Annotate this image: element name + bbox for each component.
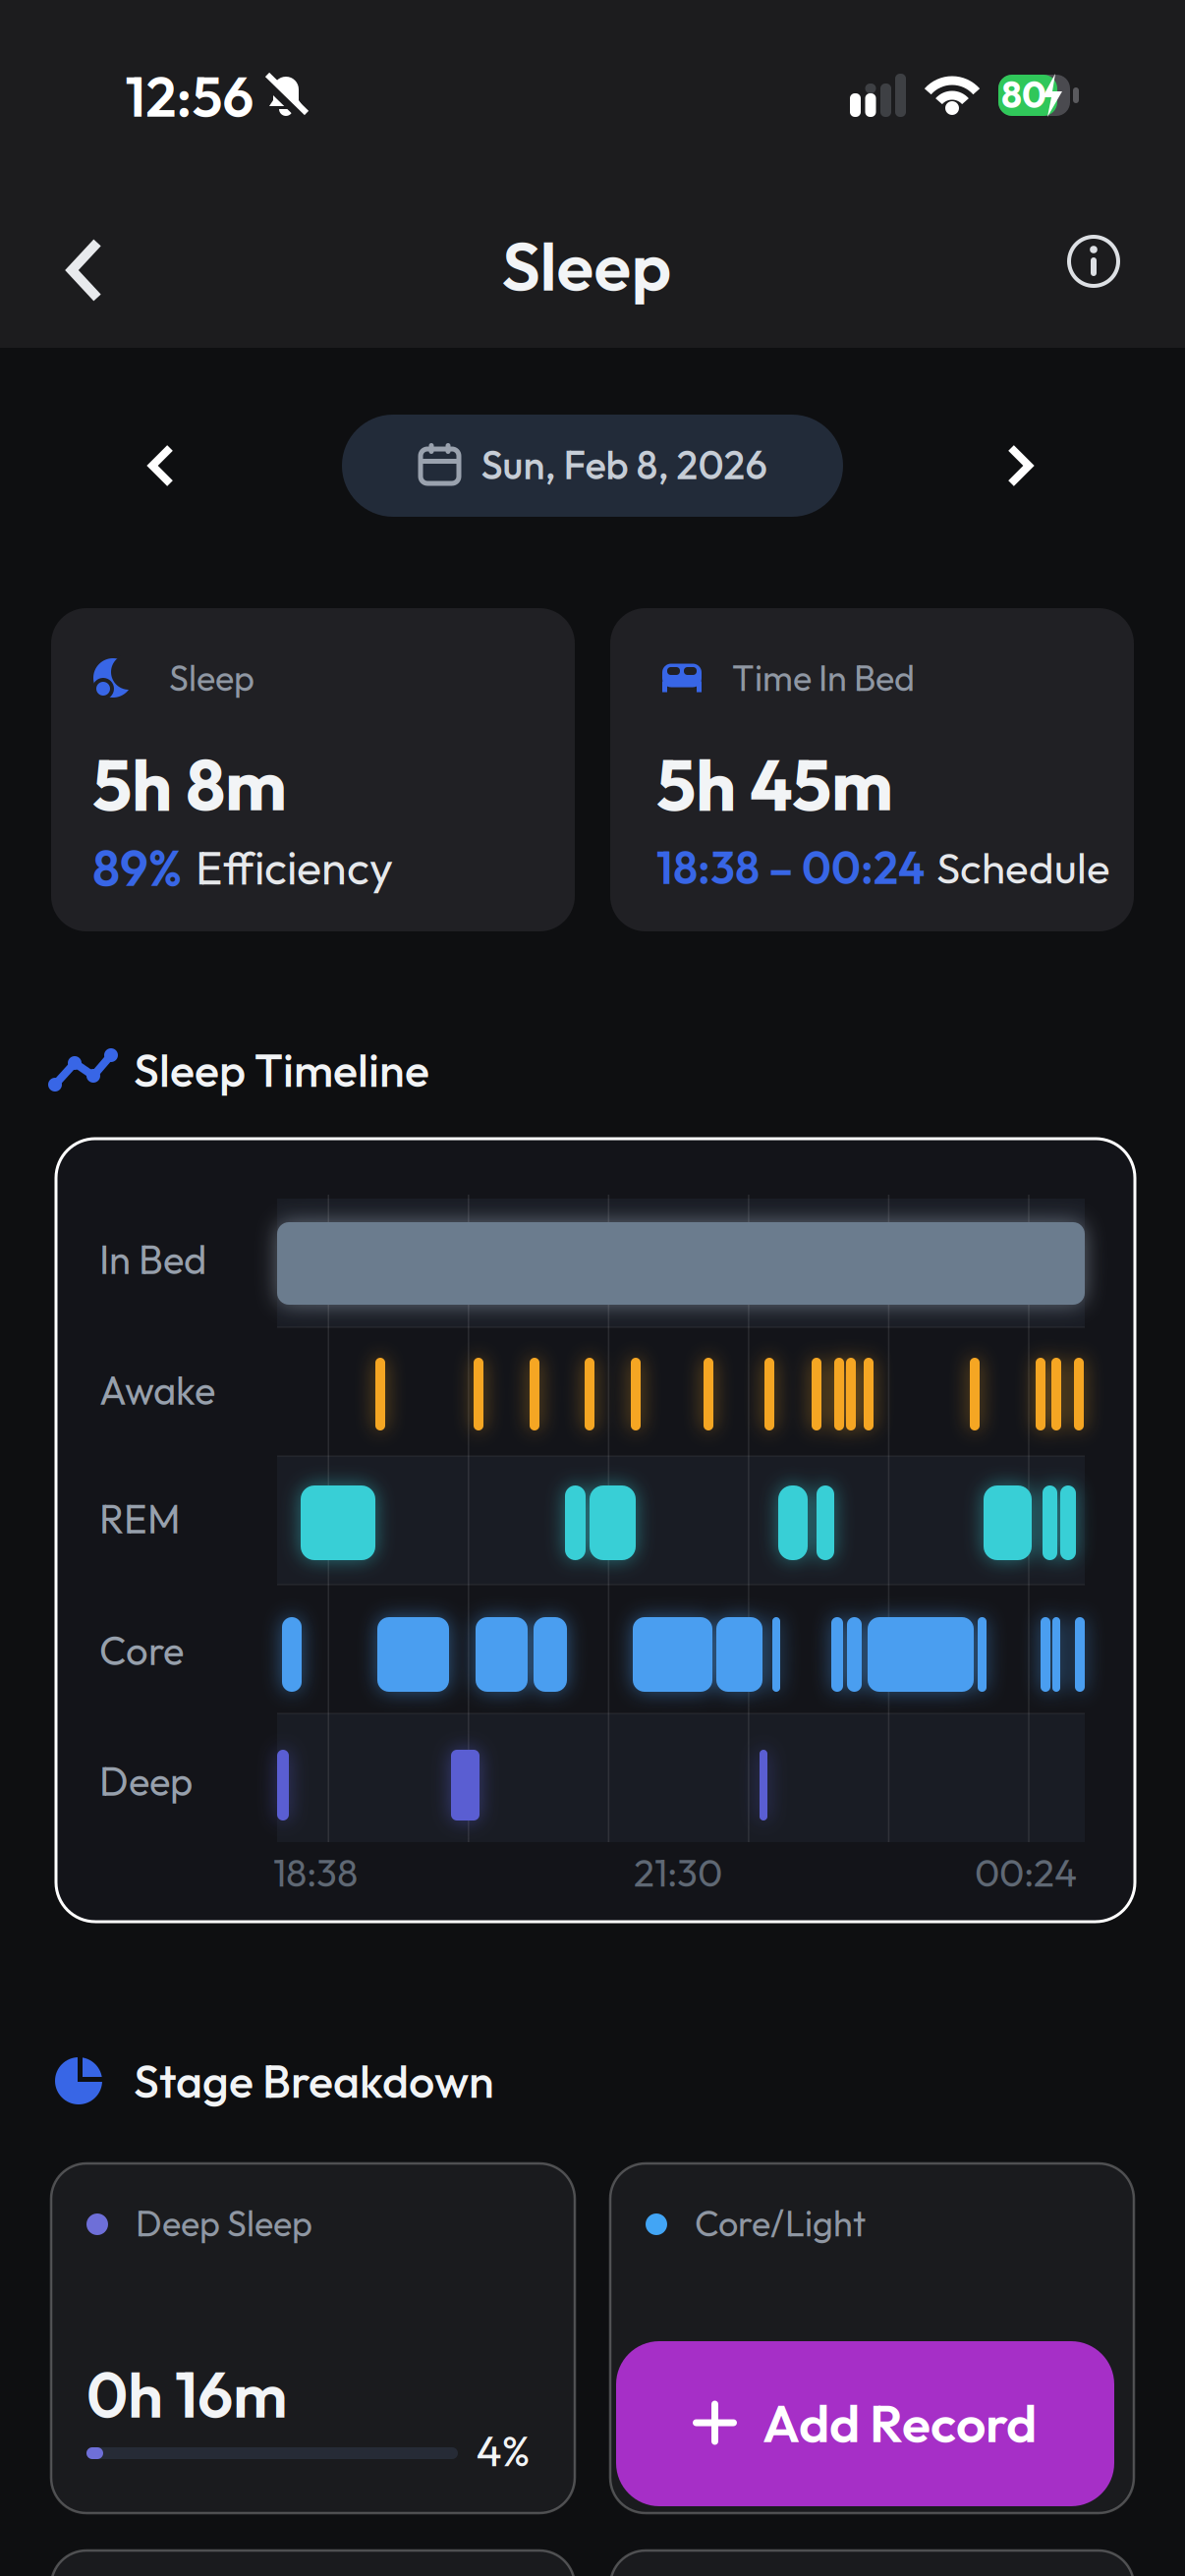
staticText: Efficiency (196, 839, 393, 896)
staticText: In Bed (99, 1235, 206, 1284)
staticText: 12:56 (125, 62, 254, 130)
staticText: Sleep (502, 223, 672, 307)
staticText: Core/Light (695, 2202, 866, 2245)
staticText: Deep Sleep (136, 2202, 312, 2245)
staticText: 80 (1001, 72, 1046, 117)
staticText: Sleep (169, 656, 254, 700)
staticText: 21:30 (634, 1849, 722, 1896)
staticText: Sleep Timeline (134, 1042, 429, 1098)
staticText: 89% (92, 837, 182, 898)
staticText: Schedule (936, 841, 1110, 894)
staticText: 4% (476, 2424, 530, 2477)
staticText: Deep (99, 1757, 193, 1805)
staticText: 5h 45m (656, 741, 893, 828)
staticText: 00:24 (975, 1849, 1077, 1896)
staticText: 18:38 – 00:24 (656, 840, 925, 895)
staticText: 5h 8m (92, 741, 287, 828)
staticText: Add Record (762, 2391, 1037, 2455)
staticText: Sun, Feb 8, 2026 (481, 441, 767, 489)
staticText: Core (99, 1626, 184, 1675)
staticText: REM (99, 1495, 181, 1543)
staticText: Time In Bed (732, 656, 915, 700)
staticText: 18:38 (273, 1849, 358, 1896)
staticText: Awake (99, 1366, 215, 1414)
staticText: 0h 16m (86, 2356, 287, 2433)
staticText: Stage Breakdown (134, 2053, 494, 2109)
